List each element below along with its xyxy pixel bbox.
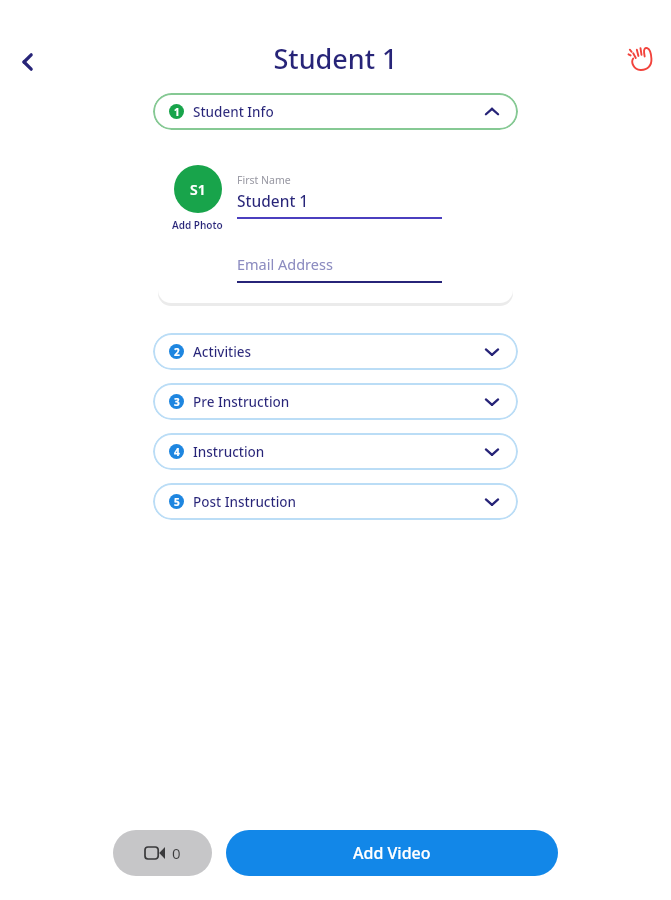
- staticText: Pre Instruction: [193, 393, 484, 411]
- button[interactable]: 2: [153, 333, 518, 370]
- button[interactable]: Add Video: [226, 830, 558, 876]
- staticText: 1: [174, 105, 180, 119]
- button[interactable]: S1: [172, 165, 223, 232]
- staticText: S1: [190, 180, 206, 199]
- staticText: First Name: [237, 173, 291, 187]
- staticText: 0: [172, 843, 181, 863]
- staticText: Instruction: [193, 443, 484, 461]
- button[interactable]: 3: [153, 383, 518, 420]
- staticText: 5: [174, 495, 180, 509]
- button[interactable]: 1: [153, 93, 518, 130]
- button[interactable]: Clap: [619, 36, 663, 80]
- staticText: 4: [174, 445, 180, 459]
- staticText: Student Info: [193, 103, 484, 121]
- button[interactable]: 5: [153, 483, 518, 520]
- staticText: Email Address: [237, 254, 333, 274]
- staticText: Student 1: [237, 190, 309, 211]
- staticText: 3: [174, 395, 180, 409]
- staticText: Post Instruction: [193, 493, 484, 511]
- staticText: Add Photo: [172, 218, 223, 232]
- staticText: Activities: [193, 343, 484, 361]
- staticText: Add Video: [353, 842, 431, 864]
- button[interactable]: 4: [153, 433, 518, 470]
- button[interactable]: Back: [4, 38, 52, 86]
- staticText: 2: [174, 345, 180, 359]
- button[interactable]: 0: [113, 830, 212, 876]
- staticText: Student 1: [0, 40, 671, 77]
